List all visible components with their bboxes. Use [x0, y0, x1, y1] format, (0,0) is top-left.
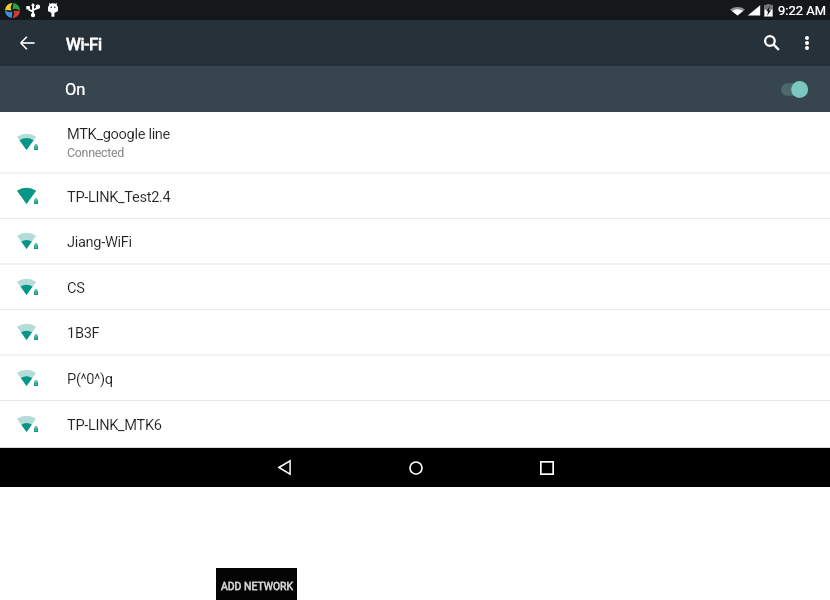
staticText: ADD NETWORK — [221, 580, 293, 592]
button[interactable]: Navigate up — [11, 27, 43, 59]
button[interactable]: CS — [0, 265, 830, 310]
button[interactable]: Recent apps — [523, 448, 571, 487]
staticText: TP-LINK_Test2.4 — [67, 188, 171, 205]
button[interactable]: MTK_google line — [0, 112, 830, 173]
button[interactable]: Home — [392, 448, 440, 487]
staticText: TP-LINK_MTK6 — [67, 416, 162, 433]
staticText: CS — [67, 279, 85, 296]
staticText: MTK_google line — [67, 125, 171, 142]
staticText: 1B3F — [67, 324, 100, 341]
button[interactable]: P(^0^)q — [0, 356, 830, 401]
button[interactable]: TP-LINK_Test2.4 — [0, 174, 830, 219]
button[interactable]: More options — [789, 25, 825, 61]
staticText: Wi-Fi — [66, 35, 103, 54]
staticText: 9:22 AM — [778, 3, 827, 18]
staticText: Jiang-WiFi — [67, 233, 132, 250]
button[interactable]: Jiang-WiFi — [0, 219, 830, 264]
button[interactable]: Search — [752, 23, 792, 63]
button[interactable]: TP-LINK_MTK6 — [0, 401, 830, 447]
button[interactable]: Back — [260, 448, 308, 487]
button[interactable]: ADD NETWORK — [216, 568, 297, 600]
button[interactable]: 1B3F — [0, 310, 830, 355]
button[interactable]: On — [0, 66, 830, 112]
button[interactable]: Wi-Fi on — [781, 81, 808, 98]
staticText: P(^0^)q — [67, 370, 113, 387]
staticText: Connected — [67, 145, 124, 160]
staticText: On — [65, 80, 86, 99]
